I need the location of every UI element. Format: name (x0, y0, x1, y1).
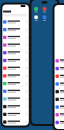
button[interactable] (3, 87, 27, 95)
button[interactable] (3, 49, 27, 57)
button[interactable] (55, 72, 64, 80)
button[interactable] (55, 57, 64, 65)
button[interactable] (3, 110, 27, 118)
button[interactable] (3, 80, 27, 87)
button[interactable]: App (41, 14, 47, 22)
button[interactable] (3, 95, 27, 103)
button[interactable] (55, 119, 64, 126)
button[interactable] (3, 118, 27, 126)
button[interactable] (3, 64, 27, 72)
button[interactable] (3, 72, 27, 80)
button[interactable] (55, 111, 64, 119)
button[interactable] (3, 103, 27, 110)
button[interactable] (55, 103, 64, 111)
button[interactable] (55, 88, 64, 95)
button[interactable] (3, 41, 27, 49)
button[interactable] (3, 18, 27, 26)
button[interactable] (3, 33, 27, 41)
button[interactable] (3, 26, 27, 33)
button[interactable] (55, 80, 64, 88)
button[interactable]: App (41, 6, 47, 13)
button[interactable] (55, 95, 64, 103)
button[interactable] (55, 65, 64, 72)
button[interactable] (3, 57, 27, 64)
button[interactable]: App (33, 6, 39, 13)
button[interactable]: App (33, 14, 39, 22)
